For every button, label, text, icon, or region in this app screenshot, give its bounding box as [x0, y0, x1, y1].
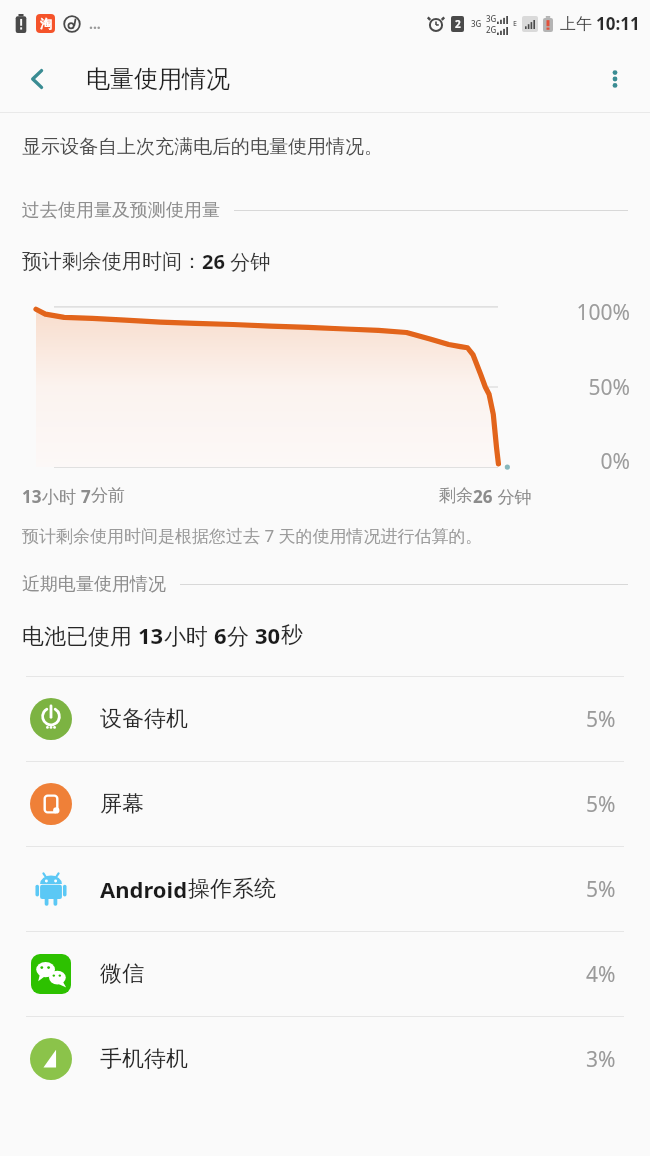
staticText: 秒: [281, 621, 303, 649]
staticText: 5%: [586, 705, 616, 734]
button[interactable]: 设备待机: [0, 677, 650, 761]
staticText: 微信: [100, 960, 144, 988]
staticText: 上午: [560, 14, 592, 34]
staticText: 26: [202, 248, 225, 275]
staticText: E: [513, 19, 517, 29]
button[interactable]: 屏幕: [0, 762, 650, 846]
staticText: 显示设备自上次充满电后的电量使用情况。: [22, 135, 383, 159]
staticText: 6: [214, 620, 227, 650]
staticText: 分前: [91, 485, 125, 506]
staticText: 淘: [40, 16, 52, 31]
staticText: 分钟: [225, 248, 271, 275]
button[interactable]: Back: [12, 53, 64, 105]
staticText: 剩余: [439, 485, 473, 506]
staticText: 5%: [586, 875, 616, 904]
staticText: ...: [89, 14, 101, 33]
staticText: 3G: [471, 18, 482, 29]
staticText: 2: [455, 17, 461, 31]
staticText: 7: [81, 485, 91, 508]
staticText: 电量使用情况: [86, 64, 230, 94]
staticText: 手机待机: [100, 1045, 188, 1073]
staticText: 小时: [164, 620, 214, 650]
staticText: 分: [227, 620, 255, 650]
staticText: 26: [473, 485, 493, 508]
button[interactable]: 手机待机: [0, 1017, 650, 1101]
staticText: 2G: [486, 24, 497, 35]
staticText: 分钟: [493, 485, 532, 508]
staticText: 0%: [600, 447, 630, 476]
staticText: 3%: [586, 1045, 616, 1074]
button[interactable]: Android: [0, 847, 650, 931]
button[interactable]: More options: [590, 54, 640, 104]
staticText: 13: [138, 620, 164, 650]
button[interactable]: 微信: [0, 932, 650, 1016]
staticText: 13: [22, 485, 42, 508]
staticText: 屏幕: [100, 790, 144, 818]
staticText: 电池已使用: [22, 620, 138, 650]
staticText: 100%: [576, 298, 630, 327]
staticText: Android: [100, 874, 188, 904]
staticText: 设备待机: [100, 705, 188, 733]
staticText: 30: [255, 620, 281, 650]
staticText: 5%: [586, 790, 616, 819]
staticText: 预计剩余使用时间：: [22, 249, 202, 274]
staticText: 小时: [42, 485, 81, 508]
staticText: 4%: [586, 960, 616, 989]
staticText: 10:11: [596, 12, 640, 35]
staticText: 预计剩余使用时间是根据您过去 7 天的使用情况进行估算的。: [22, 524, 483, 547]
staticText: 近期电量使用情况: [22, 573, 166, 596]
staticText: 3G: [486, 13, 497, 24]
staticText: 过去使用量及预测使用量: [22, 199, 220, 222]
staticText: 操作系统: [188, 875, 276, 903]
staticText: 50%: [588, 373, 630, 402]
